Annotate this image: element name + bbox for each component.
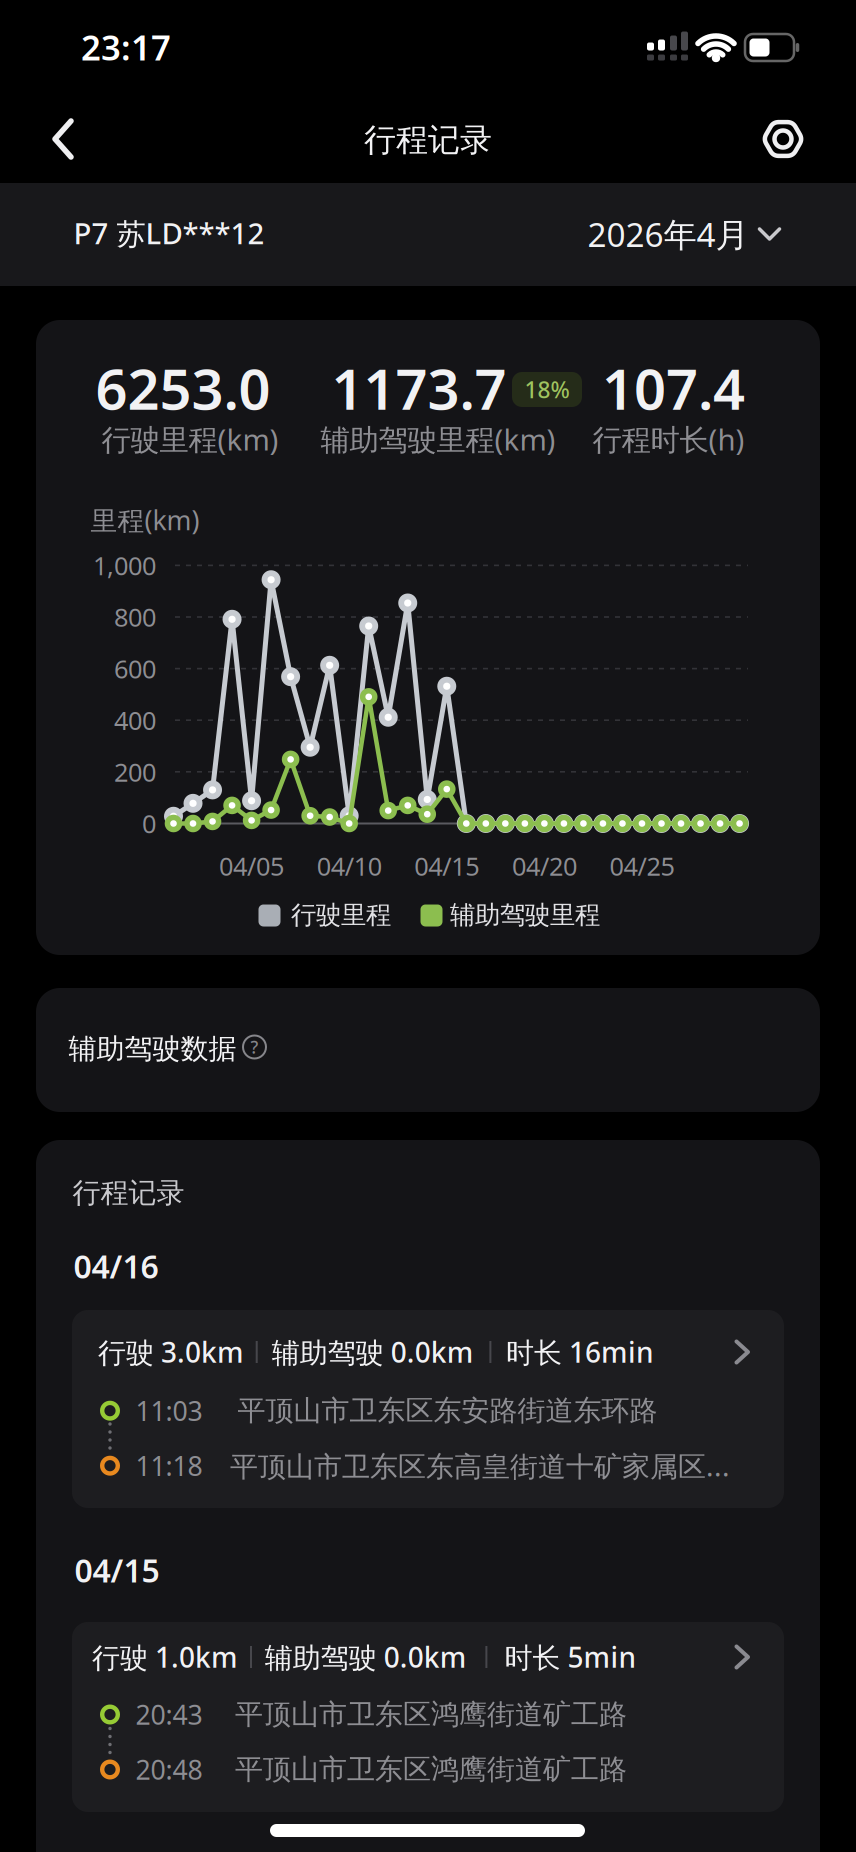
staticText: 800 — [114, 600, 156, 634]
staticText: 里程(km) — [90, 502, 199, 538]
staticText: 辅助驾驶里程(km) — [320, 419, 555, 458]
staticText: 04/25 — [609, 849, 674, 883]
staticText: 20:48 — [135, 1752, 202, 1787]
staticText: 04/15 — [414, 849, 479, 883]
button[interactable]: 行驶 1.0km — [72, 1622, 784, 1812]
staticText: 11:18 — [135, 1448, 202, 1483]
staticText: 平顶山市卫东区鸿鹰街道矿工路 — [235, 1697, 627, 1732]
staticText: 辅助驾驶 0.0km — [265, 1638, 467, 1676]
staticText: 平顶山市卫东区鸿鹰街道矿工路 — [235, 1752, 627, 1787]
staticText: 107.4 — [602, 351, 745, 425]
staticText: 2026年4月 — [587, 212, 748, 256]
button[interactable]: 行驶 3.0km — [72, 1310, 784, 1508]
staticText: 400 — [114, 703, 156, 737]
staticText: 时长 5min — [504, 1638, 636, 1676]
button[interactable]: 2026年4月 — [587, 212, 780, 256]
staticText: 04/16 — [73, 1245, 158, 1287]
button[interactable]: Settings — [755, 111, 811, 167]
staticText: P7 苏LD***12 — [73, 213, 264, 252]
staticText: 行程记录 — [72, 1176, 184, 1210]
staticText: 辅助驾驶里程 — [450, 899, 600, 930]
staticText: ? — [250, 1035, 258, 1058]
staticText: 200 — [114, 755, 156, 789]
staticText: 18% — [524, 374, 569, 404]
button[interactable]: 辅助驾驶数据 — [36, 988, 820, 1112]
staticText: 04/15 — [74, 1549, 159, 1591]
staticText: 1173.7 — [331, 351, 506, 425]
staticText: 辅助驾驶数据 — [68, 1032, 236, 1066]
staticText: 时长 16min — [506, 1333, 654, 1371]
staticText: 行驶里程(km) — [101, 419, 278, 458]
staticText: 6253.0 — [95, 351, 270, 425]
staticText: 04/05 — [219, 849, 284, 883]
staticText: 1,000 — [93, 549, 156, 582]
staticText: 行程时长(h) — [592, 419, 744, 458]
staticText: 600 — [114, 652, 156, 685]
staticText: 04/20 — [512, 849, 577, 883]
staticText: 0 — [142, 807, 156, 840]
staticText: 20:43 — [135, 1697, 202, 1732]
staticText: 行驶 1.0km — [92, 1638, 238, 1676]
staticText: 行驶里程 — [291, 899, 391, 930]
button[interactable]: Back — [42, 117, 86, 161]
staticText: 23:17 — [81, 24, 171, 70]
staticText: 行驶 3.0km — [98, 1333, 244, 1371]
staticText: 平顶山市卫东区东高皇街道十矿家属区... — [230, 1447, 730, 1484]
staticText: 行程记录 — [364, 120, 492, 160]
staticText: 平顶山市卫东区东安路街道东环路 — [237, 1393, 657, 1428]
staticText: 11:03 — [135, 1393, 202, 1428]
staticText: 04/10 — [317, 849, 382, 883]
staticText: 辅助驾驶 0.0km — [272, 1333, 474, 1371]
